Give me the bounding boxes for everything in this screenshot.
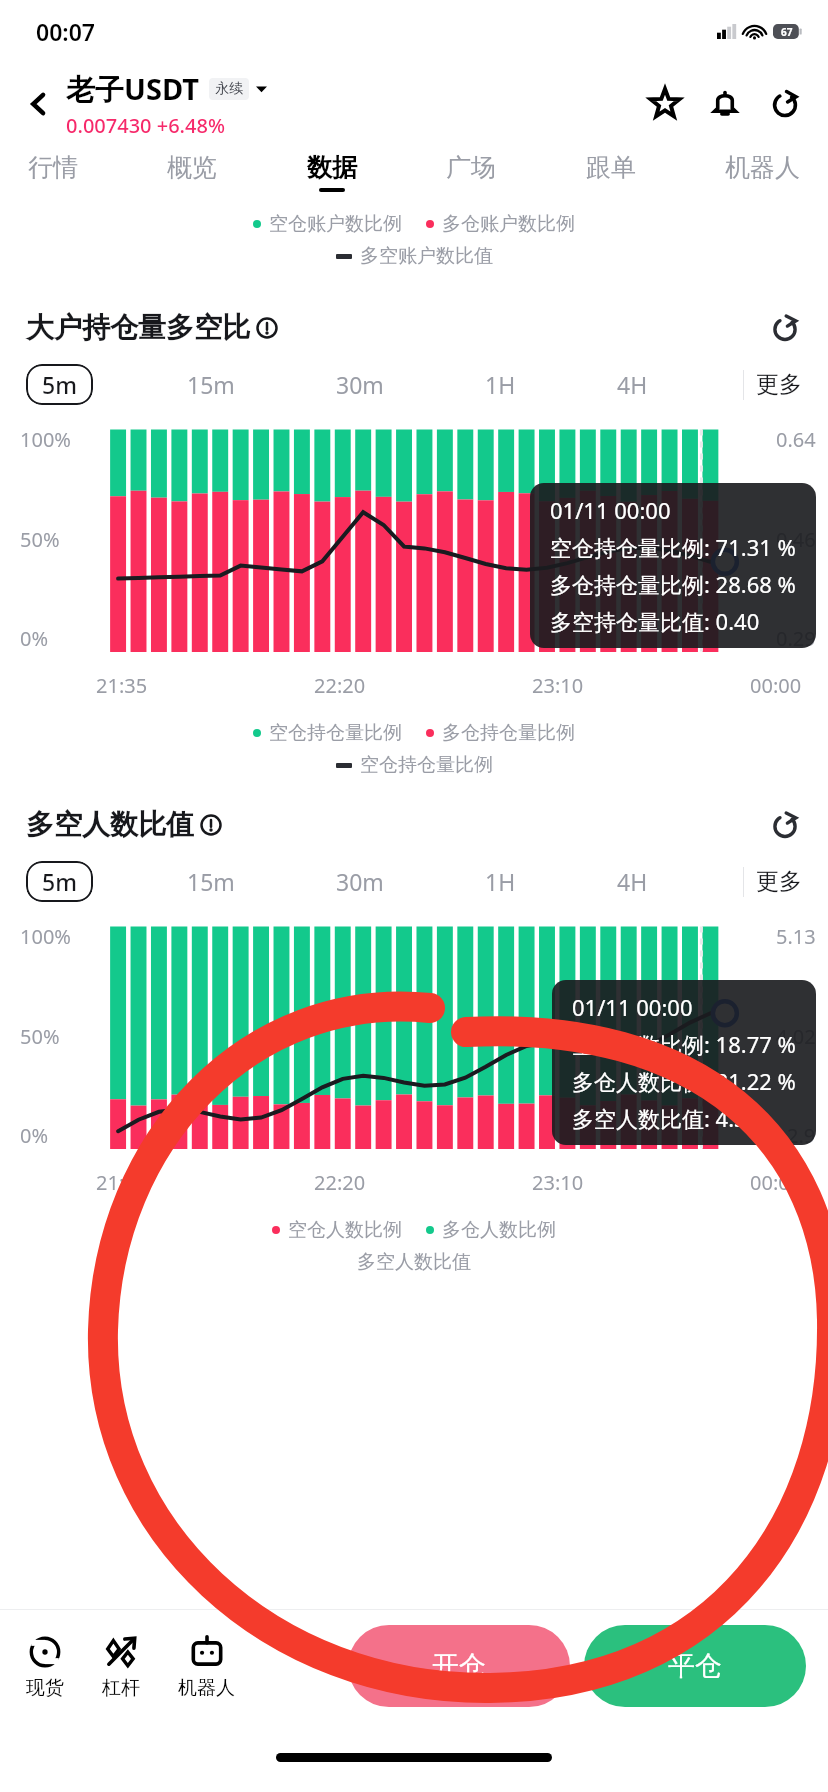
- staticText: 4H: [617, 866, 648, 897]
- button[interactable]: Expand chart: [768, 311, 802, 345]
- button[interactable]: 机器人: [174, 1629, 239, 1704]
- staticText: 永续: [215, 80, 243, 98]
- staticText: 0%: [20, 1122, 49, 1149]
- button[interactable]: 广场: [444, 146, 498, 198]
- staticText: 1H: [485, 369, 516, 400]
- staticText: 空仓人数比例: 18.77 %: [572, 1029, 796, 1059]
- button[interactable]: 机器人: [723, 146, 802, 198]
- button[interactable]: Share: [764, 83, 806, 125]
- staticText: 50%: [20, 1023, 60, 1050]
- staticText: 大户持仓量多空比: [26, 310, 250, 345]
- staticText: 01/11 00:00: [550, 495, 671, 525]
- staticText: 21:35: [96, 1169, 148, 1196]
- button[interactable]: 4H: [611, 363, 654, 406]
- staticText: 行情: [28, 152, 78, 183]
- staticText: 概览: [167, 152, 217, 183]
- staticText: 67: [781, 25, 793, 39]
- staticText: 多仓人数比例: 81.22 %: [572, 1066, 796, 1096]
- button[interactable]: 更多: [756, 370, 802, 399]
- staticText: 23:10: [532, 672, 584, 699]
- staticText: 开仓: [432, 1649, 486, 1683]
- staticText: 更多: [756, 867, 802, 896]
- staticText: 0.007430 +6.48%: [66, 112, 225, 139]
- button[interactable]: 现货: [22, 1629, 68, 1704]
- staticText: 空仓持仓量比例: [269, 721, 402, 745]
- button[interactable]: Expand chart: [768, 808, 802, 842]
- button[interactable]: 跟单: [584, 146, 638, 198]
- staticText: 0.29: [776, 625, 816, 652]
- staticText: 22:20: [314, 672, 366, 699]
- button[interactable]: 15m: [181, 860, 241, 903]
- staticText: 空仓人数比例: [288, 1218, 402, 1242]
- staticText: 多空持仓量比值: 0.40: [550, 606, 760, 636]
- staticText: 5m: [42, 866, 77, 897]
- staticText: 平仓: [668, 1649, 722, 1683]
- staticText: 23:10: [532, 1169, 584, 1196]
- staticText: 1H: [485, 866, 516, 897]
- staticText: 空仓持仓量比例: 71.31 %: [550, 532, 796, 562]
- staticText: 21:35: [96, 672, 148, 699]
- staticText: 00:00: [750, 672, 802, 699]
- staticText: 0.64: [776, 426, 816, 453]
- button[interactable]: 4H: [611, 860, 654, 903]
- staticText: 跟单: [586, 152, 636, 183]
- staticText: 5.13: [776, 923, 816, 950]
- button[interactable]: 行情: [26, 146, 80, 198]
- staticText: 22:20: [314, 1169, 366, 1196]
- staticText: 15m: [187, 866, 235, 897]
- button[interactable]: 30m: [330, 860, 390, 903]
- button[interactable]: 杠杆: [98, 1629, 144, 1704]
- staticText: 多仓账户数比例: [442, 212, 575, 236]
- button[interactable]: Alerts: [704, 83, 746, 125]
- staticText: 30m: [336, 866, 384, 897]
- button[interactable]: 5m: [26, 364, 93, 405]
- button[interactable]: 30m: [330, 363, 390, 406]
- staticText: 多空人数比值: [26, 807, 194, 842]
- staticText: 01/11 00:00: [572, 992, 693, 1022]
- staticText: 机器人: [178, 1676, 235, 1700]
- staticText: 0%: [20, 625, 49, 652]
- button[interactable]: 概览: [165, 146, 219, 198]
- staticText: 100%: [20, 426, 71, 453]
- button[interactable]: 数据: [305, 146, 359, 198]
- staticText: 4H: [617, 369, 648, 400]
- staticText: 多仓持仓量比例: [442, 721, 575, 745]
- staticText: 多空人数比值: [0, 1250, 828, 1274]
- button[interactable]: 更多: [756, 867, 802, 896]
- staticText: 多空人数比值: 4.32: [572, 1103, 760, 1133]
- button[interactable]: 1H: [479, 363, 522, 406]
- staticText: 数据: [307, 152, 357, 183]
- staticText: 2.9: [787, 1122, 816, 1149]
- staticText: 00:07: [36, 16, 95, 47]
- staticText: 空仓账户数比例: [269, 212, 402, 236]
- button[interactable]: 15m: [181, 363, 241, 406]
- staticText: 30m: [336, 369, 384, 400]
- staticText: 0.46: [776, 526, 816, 553]
- staticText: 多仓人数比例: [442, 1218, 556, 1242]
- staticText: 老子USDT: [66, 69, 199, 109]
- staticText: 空仓持仓量比例: [360, 753, 493, 777]
- button[interactable]: 平仓: [584, 1625, 806, 1707]
- staticText: 机器人: [725, 152, 800, 183]
- staticText: 多空账户数比值: [360, 244, 493, 268]
- staticText: 杠杆: [102, 1676, 140, 1700]
- button[interactable]: 开仓: [348, 1625, 570, 1707]
- staticText: 100%: [20, 923, 71, 950]
- button[interactable]: 1H: [479, 860, 522, 903]
- staticText: 4.02: [776, 1023, 816, 1050]
- button[interactable]: Favorite: [644, 83, 686, 125]
- staticText: 15m: [187, 369, 235, 400]
- staticText: 现货: [26, 1676, 64, 1700]
- button[interactable]: Back: [22, 87, 56, 121]
- staticText: 更多: [756, 370, 802, 399]
- staticText: 广场: [446, 152, 496, 183]
- button[interactable]: 5m: [26, 861, 93, 902]
- staticText: 50%: [20, 526, 60, 553]
- staticText: 00:00: [750, 1169, 802, 1196]
- staticText: 5m: [42, 369, 77, 400]
- staticText: 多仓持仓量比例: 28.68 %: [550, 569, 796, 599]
